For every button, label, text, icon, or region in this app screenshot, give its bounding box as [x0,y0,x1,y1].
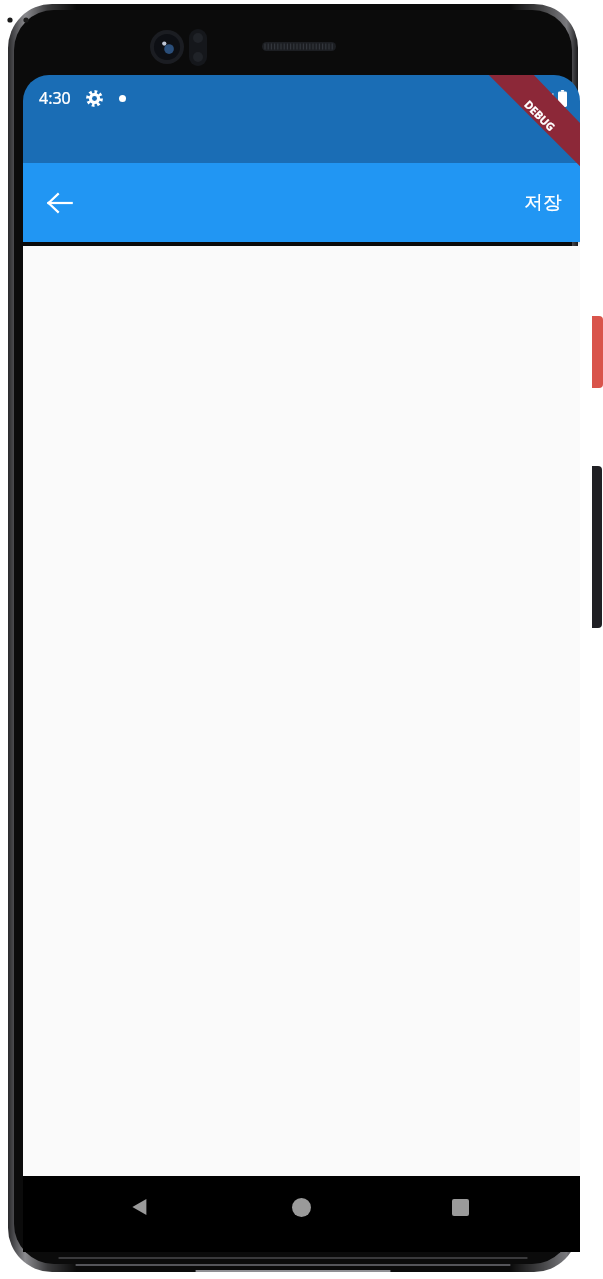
button[interactable]: 저장 [506,163,580,242]
staticText: 4:30 [39,87,71,109]
button[interactable]: Back [31,174,89,232]
staticText: 저장 [524,191,562,215]
button[interactable]: Back [117,1184,163,1230]
staticText: DEBUG [521,97,559,134]
button[interactable]: Recent apps [437,1184,483,1230]
button[interactable]: Home [278,1184,324,1230]
